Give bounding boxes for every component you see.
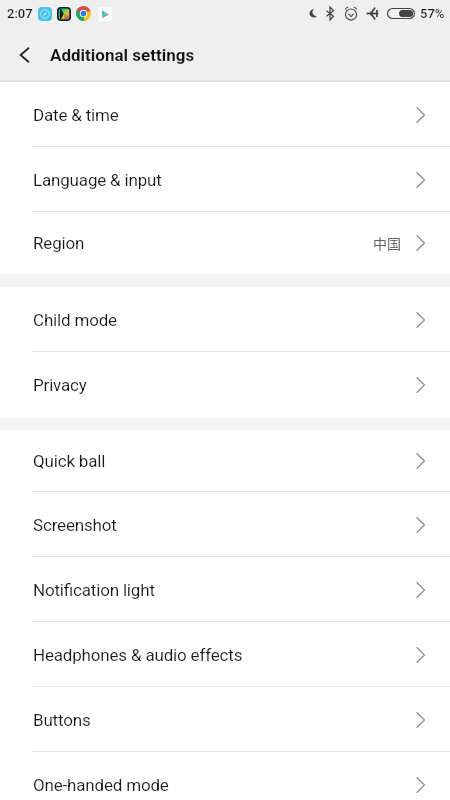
button[interactable]: Child mode bbox=[0, 287, 450, 352]
staticText: 中国 bbox=[373, 233, 401, 253]
staticText: Additional settings bbox=[50, 45, 195, 65]
staticText: Buttons bbox=[33, 710, 91, 730]
button[interactable]: Notification light bbox=[0, 557, 450, 622]
staticText: 2:07 bbox=[7, 6, 33, 21]
button[interactable]: Quick ball bbox=[0, 430, 450, 492]
staticText: Headphones & audio effects bbox=[33, 645, 243, 665]
button[interactable]: Buttons bbox=[0, 687, 450, 752]
staticText: Region bbox=[33, 233, 85, 253]
staticText: Quick ball bbox=[33, 451, 106, 471]
button[interactable]: Language & input bbox=[0, 147, 450, 212]
button[interactable]: One-handed mode bbox=[0, 752, 450, 800]
staticText: Screenshot bbox=[33, 515, 117, 535]
staticText: Privacy bbox=[33, 375, 87, 395]
staticText: Notification light bbox=[33, 580, 155, 600]
button[interactable]: Date & time bbox=[0, 82, 450, 147]
staticText: Date & time bbox=[33, 105, 119, 125]
staticText: One-handed mode bbox=[33, 775, 169, 795]
staticText: 57% bbox=[420, 6, 445, 21]
staticText: Child mode bbox=[33, 310, 117, 330]
button[interactable]: Screenshot bbox=[0, 492, 450, 557]
button[interactable]: Headphones & audio effects bbox=[0, 622, 450, 687]
button[interactable]: Privacy bbox=[0, 352, 450, 418]
button[interactable]: Back bbox=[0, 28, 50, 82]
button[interactable]: Region bbox=[0, 212, 450, 274]
staticText: Language & input bbox=[33, 170, 162, 190]
